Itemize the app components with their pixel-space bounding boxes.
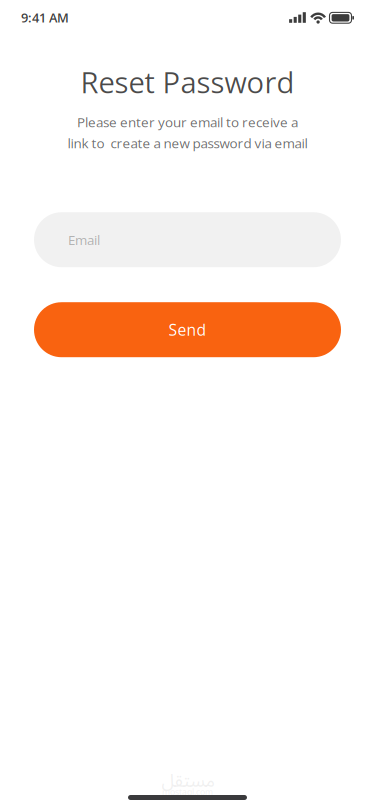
staticText: Email [68,231,100,249]
staticText: مستقل [161,762,214,800]
staticText: Send [168,319,206,340]
staticText: mostaql.com [162,786,213,798]
staticText: Please enter your email to receive a [77,113,298,131]
staticText: Reset Password [80,62,294,102]
button[interactable]: Send [34,302,341,357]
staticText: link to create a new password via email [67,134,307,152]
button[interactable]: Email [34,212,341,267]
staticText: 9:41 AM [21,9,69,26]
